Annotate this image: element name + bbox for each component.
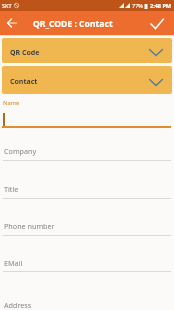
- button[interactable]: EMail: [0, 248, 174, 273]
- button[interactable]: QR Code: [2, 38, 172, 63]
- staticText: Contact: [10, 77, 38, 87]
- button[interactable]: [147, 15, 167, 32]
- staticText: QR Code: [10, 48, 40, 58]
- staticText: Phone number: [4, 221, 55, 231]
- button[interactable]: [4, 15, 20, 31]
- button[interactable]: Address: [0, 290, 174, 310]
- staticText: EMail: [4, 258, 23, 268]
- button[interactable]: Company: [0, 136, 174, 162]
- button[interactable]: Name: [0, 96, 174, 130]
- staticText: Title: [4, 184, 19, 194]
- button[interactable]: Title: [0, 174, 174, 200]
- staticText: Name: [3, 99, 20, 107]
- staticText: SKT: [2, 2, 12, 9]
- staticText: Company: [4, 146, 37, 156]
- staticText: Address: [4, 300, 32, 310]
- staticText: 2:48 PM: [150, 2, 172, 9]
- staticText: 77%: [132, 2, 143, 9]
- staticText: QR_CODE : Contact: [33, 18, 113, 30]
- button[interactable]: Phone number: [0, 211, 174, 237]
- button[interactable]: Contact: [2, 66, 172, 94]
